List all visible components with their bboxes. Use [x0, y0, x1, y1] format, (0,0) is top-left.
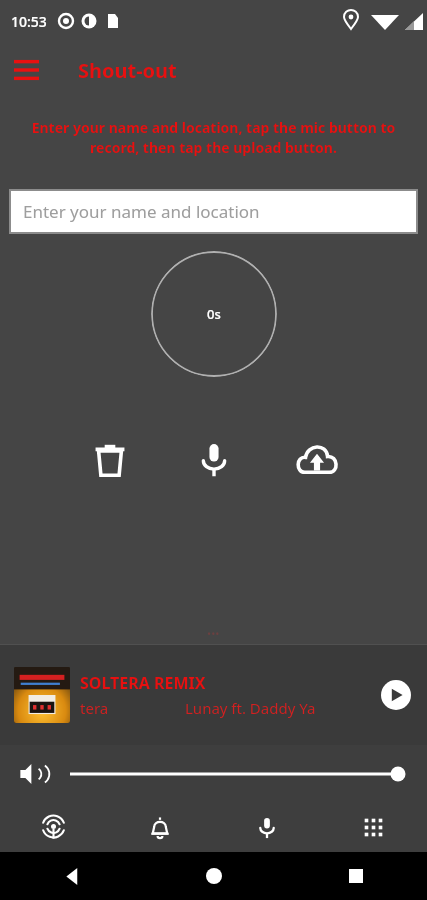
button[interactable]: SOLTERA REMIX: [0, 645, 427, 745]
staticText: 10:53: [11, 12, 47, 31]
staticText: Enter your name and location, tap the mi…: [22, 118, 405, 157]
button[interactable]: More: [320, 803, 427, 852]
button[interactable]: Notifications: [106, 803, 213, 852]
staticText: •••: [207, 626, 220, 641]
staticText: Lunay ft. Daddy Ya: [185, 698, 316, 718]
button[interactable]: Recent apps: [339, 859, 373, 893]
button[interactable]: Back: [55, 859, 89, 893]
staticText: 0s: [207, 305, 221, 323]
staticText: tera: [80, 698, 109, 718]
button[interactable]: Open navigation menu: [4, 48, 48, 92]
button[interactable]: Home: [197, 859, 231, 893]
button[interactable]: Play: [379, 678, 413, 712]
button[interactable]: Live: [0, 803, 106, 852]
button[interactable]: Volume: [16, 757, 50, 791]
button[interactable]: Upload: [289, 432, 345, 488]
button[interactable]: Volume slider: [70, 761, 405, 787]
button[interactable]: Recording timer: [151, 251, 277, 377]
staticText: Shout-out: [78, 57, 177, 84]
button[interactable]: Enter your name and location: [11, 191, 416, 232]
button[interactable]: Delete recording: [82, 432, 138, 488]
staticText: SOLTERA REMIX: [80, 672, 206, 694]
button[interactable]: Shout-out: [213, 803, 320, 852]
staticText: Enter your name and location: [23, 200, 260, 223]
button[interactable]: Record: [186, 432, 242, 488]
